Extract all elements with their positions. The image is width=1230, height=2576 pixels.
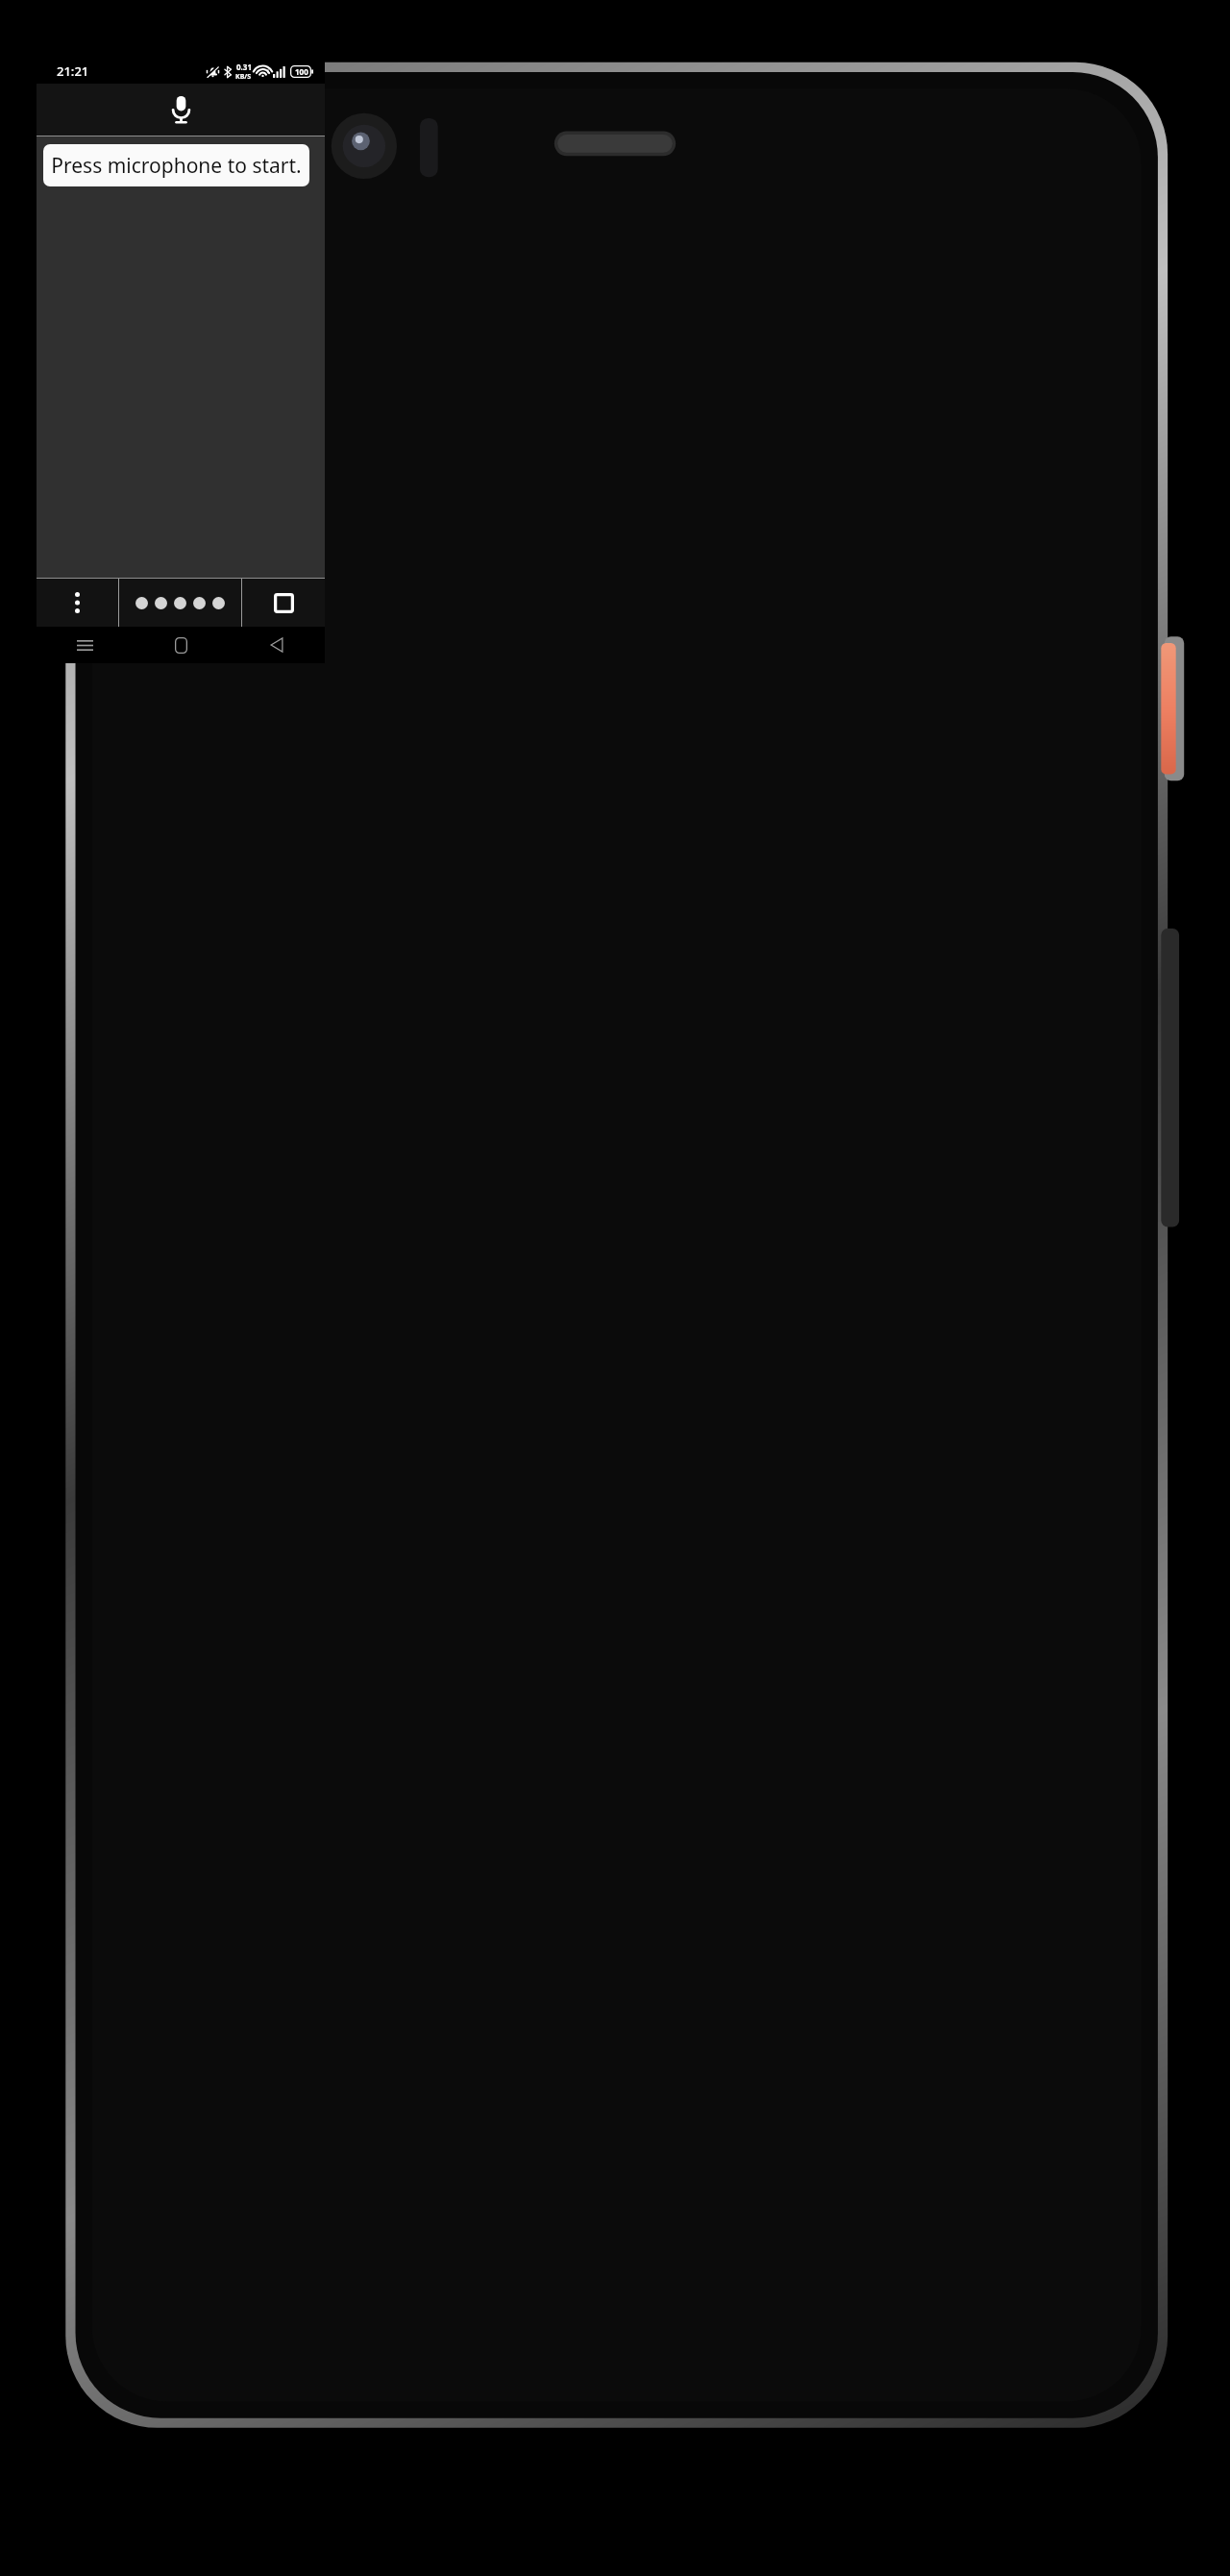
button[interactable]: Recents — [37, 627, 133, 663]
staticText: 0.31 — [236, 62, 252, 72]
button[interactable]: Audio level — [119, 579, 241, 627]
staticText: 21:21 — [57, 62, 89, 80]
staticText: Press microphone to start. — [51, 152, 302, 180]
staticText: 100 — [295, 66, 308, 77]
button[interactable]: Press microphone to start. — [43, 144, 309, 186]
button[interactable]: More options — [37, 579, 118, 627]
button[interactable]: Back — [229, 627, 325, 663]
button[interactable]: Stop — [242, 579, 325, 627]
button[interactable]: Record with microphone — [160, 88, 202, 131]
button[interactable]: Home — [133, 627, 229, 663]
staticText: KB/S — [235, 72, 252, 82]
